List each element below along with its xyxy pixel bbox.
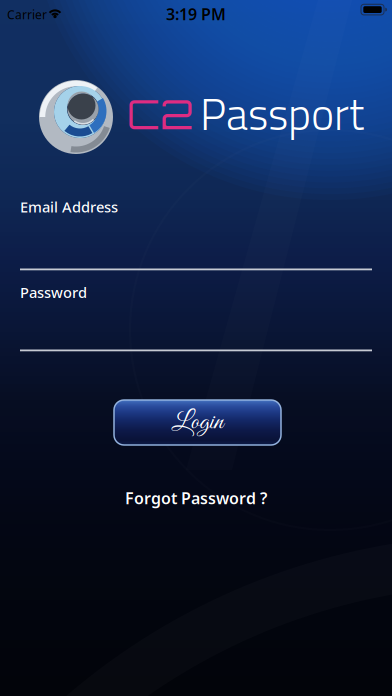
staticText: Carrier <box>7 6 47 22</box>
button[interactable]: Login <box>114 400 281 445</box>
staticText: Passport <box>200 80 364 147</box>
staticText: C2 <box>127 89 193 139</box>
button[interactable]: Email Address <box>20 197 372 270</box>
button[interactable]: Password <box>20 282 372 351</box>
staticText: Login <box>171 406 223 439</box>
staticText: 3:19 PM <box>166 3 226 25</box>
staticText: Password <box>20 282 87 302</box>
staticText: Forgot Password ? <box>125 487 267 509</box>
staticText: Email Address <box>20 197 118 216</box>
button[interactable]: Forgot Password ? <box>125 487 267 509</box>
